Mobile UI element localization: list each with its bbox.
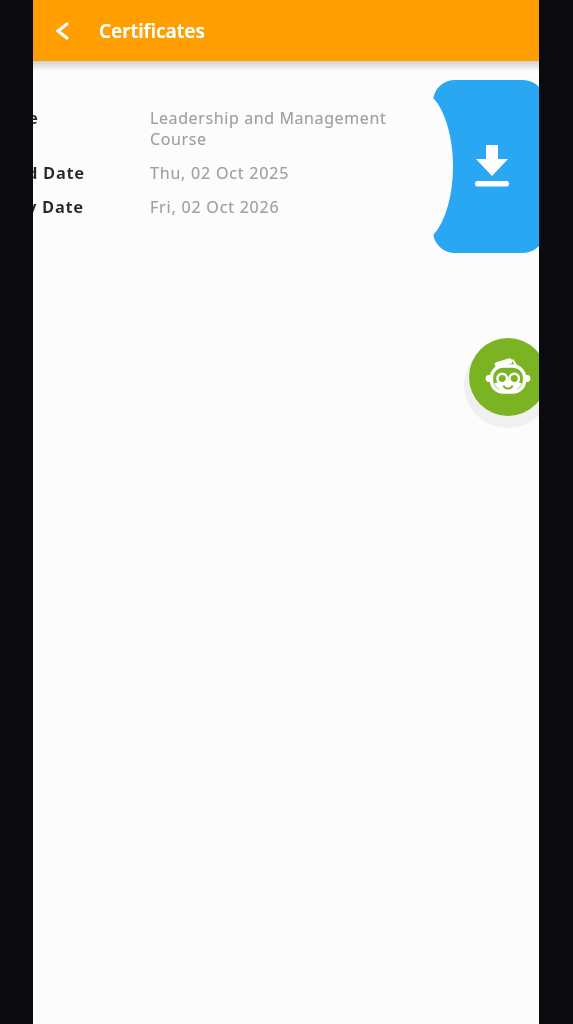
button[interactable] <box>469 338 539 416</box>
staticText: d Date <box>33 161 85 183</box>
staticText: e <box>33 106 38 128</box>
button[interactable] <box>429 80 539 253</box>
staticText: y Date <box>33 195 84 217</box>
staticText: Thu, 02 Oct 2025 <box>150 162 290 184</box>
staticText: Leadership and Management Course <box>150 107 410 150</box>
staticText: Fri, 02 Oct 2026 <box>150 196 280 218</box>
button[interactable] <box>47 15 79 47</box>
staticText: Certificates <box>99 18 205 44</box>
